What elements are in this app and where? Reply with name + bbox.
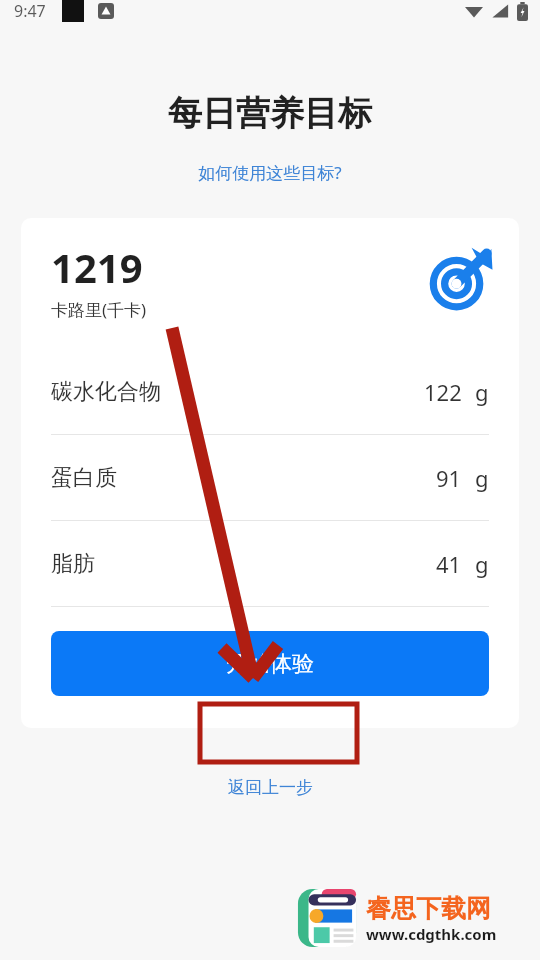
button[interactable]: 如何使用这些目标? [188, 157, 352, 188]
staticText: 碳水化合物 [51, 378, 161, 406]
other: Goal target [431, 250, 489, 308]
button[interactable]: 返回上一步 [218, 773, 323, 802]
staticText: 开始体验 [226, 650, 314, 678]
staticText: g [475, 377, 489, 407]
staticText: 卡路里(千卡) [51, 298, 147, 321]
staticText: g [475, 549, 489, 579]
staticText: 122 [424, 377, 462, 407]
staticText: 41 [436, 549, 462, 579]
staticText: g [475, 463, 489, 493]
staticText: 1219 [51, 240, 143, 294]
staticText: 睿思下载网 [366, 893, 491, 924]
staticText: www.cdgthk.com [366, 924, 497, 944]
staticText: 每日营养目标 [0, 92, 540, 135]
staticText: 91 [436, 463, 462, 493]
button[interactable]: 开始体验 [51, 631, 489, 696]
staticText: 9:47 [14, 0, 46, 22]
staticText: 脂肪 [51, 550, 95, 578]
staticText: 蛋白质 [51, 464, 117, 492]
